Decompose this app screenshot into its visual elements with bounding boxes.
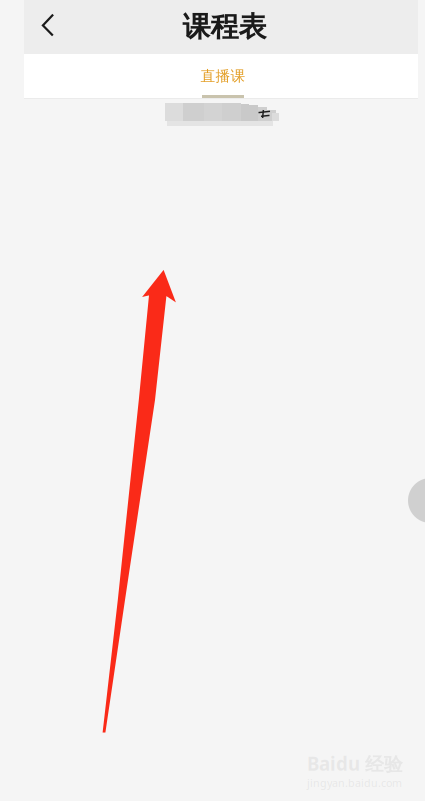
button[interactable]: 直播课: [24, 54, 418, 98]
staticText: Baidu 经验: [307, 751, 403, 776]
staticText: 课程表: [182, 10, 266, 44]
staticText: 直播课: [200, 67, 245, 85]
button[interactable]: Back: [24, 1, 72, 49]
staticText: jingyan.baidu.com: [307, 776, 402, 790]
button[interactable]: Floating action: [408, 478, 425, 523]
